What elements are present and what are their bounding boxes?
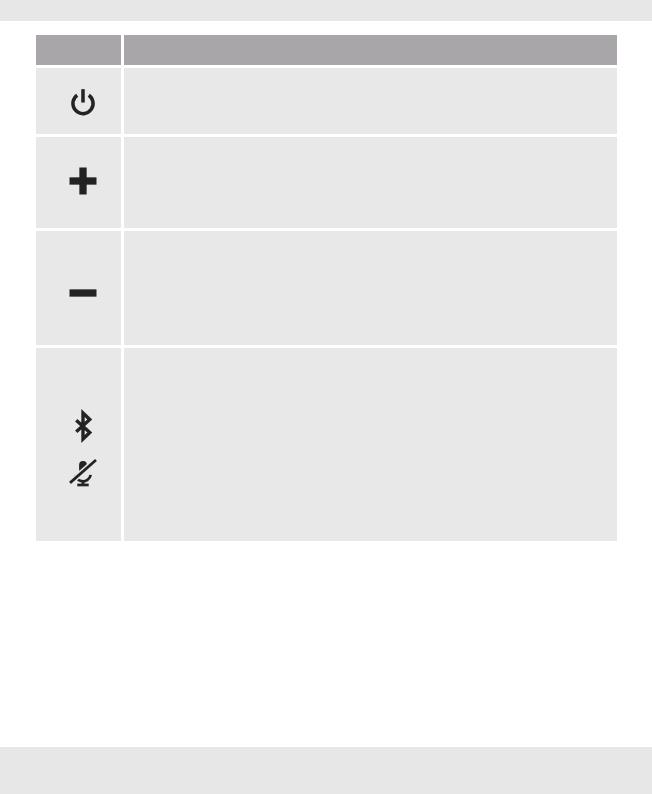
button[interactable]: Bluetooth and mute (36, 348, 617, 541)
button[interactable]: Table header (36, 35, 617, 65)
button[interactable]: Volume up (36, 137, 617, 228)
button[interactable]: Volume down (36, 231, 617, 345)
button[interactable]: Power button (36, 68, 617, 134)
